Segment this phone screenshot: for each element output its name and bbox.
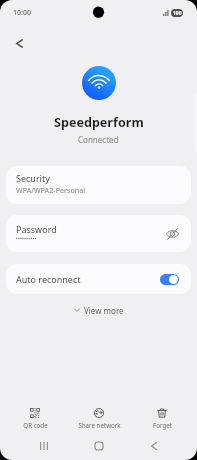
button[interactable]: QR code: [7, 404, 63, 429]
staticText: WPA/WPA2-Personal: [16, 185, 86, 195]
staticText: Connected: [78, 134, 119, 145]
button[interactable]: Navigate up: [5, 28, 33, 56]
button[interactable]: Recents: [31, 433, 57, 459]
button[interactable]: Share network: [71, 404, 127, 429]
button[interactable]: View more: [0, 302, 197, 318]
button[interactable]: Password: [6, 215, 191, 252]
staticText: Auto reconnect: [16, 273, 81, 285]
staticText: Share network: [78, 421, 121, 429]
button[interactable]: Home: [86, 433, 112, 459]
button[interactable]: Show password: [162, 224, 182, 244]
button[interactable]: Back: [141, 433, 167, 459]
staticText: 10:00: [13, 8, 31, 18]
button[interactable]: Auto reconnect: [6, 264, 191, 294]
staticText: QR code: [23, 421, 48, 429]
staticText: Security: [16, 172, 50, 184]
staticText: Password: [16, 223, 57, 235]
staticText: 100: [173, 10, 182, 17]
staticText: View more: [84, 305, 124, 316]
button[interactable]: Auto reconnect toggle: [160, 274, 179, 285]
staticText: Forget: [153, 421, 172, 429]
staticText: Speedperform: [54, 114, 144, 131]
button[interactable]: Security: [6, 166, 191, 204]
button[interactable]: Forget: [134, 404, 190, 429]
button[interactable]: Edge panel handle: [193, 91, 197, 153]
